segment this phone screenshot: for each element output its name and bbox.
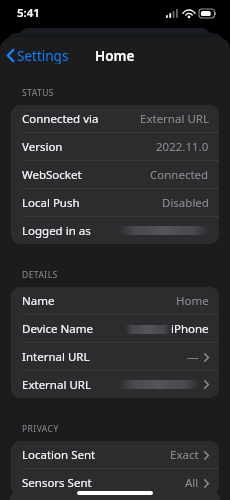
staticText: Location Sent xyxy=(22,447,96,463)
button[interactable]: Internal URL xyxy=(11,343,219,370)
staticText: External URL xyxy=(22,377,91,393)
staticText: 5:41 xyxy=(17,5,40,21)
staticText: Version xyxy=(22,139,63,155)
staticText: STATUS xyxy=(22,87,54,99)
staticText: Exact xyxy=(170,447,199,463)
staticText: PRIVACY xyxy=(22,423,59,435)
button[interactable]: Sensors Sent xyxy=(11,469,219,496)
other: Open xyxy=(204,353,209,362)
staticText: Device Name xyxy=(22,321,93,337)
staticText: External URL xyxy=(140,111,209,127)
staticText: Name xyxy=(22,293,55,309)
other: Open xyxy=(204,380,209,389)
button[interactable]: Location Sent xyxy=(11,441,219,468)
staticText: Logged in as xyxy=(22,223,91,239)
staticText: Disabled xyxy=(162,195,209,211)
staticText: Sensors Sent xyxy=(22,475,92,491)
staticText: Home xyxy=(176,293,209,309)
button[interactable]: External URL xyxy=(11,371,219,398)
staticText: Local Push xyxy=(22,195,80,211)
other: Open xyxy=(204,479,209,488)
staticText: Internal URL xyxy=(22,349,90,365)
staticText: DETAILS xyxy=(22,269,58,281)
staticText: 2022.11.0 xyxy=(156,139,209,155)
staticText: iPhone xyxy=(171,321,209,337)
staticText: Connected xyxy=(150,167,209,183)
other: Open xyxy=(204,451,209,460)
staticText: Home xyxy=(95,47,135,65)
staticText: Connected via xyxy=(22,111,99,127)
staticText: — xyxy=(187,349,199,365)
staticText: Settings xyxy=(17,47,69,64)
staticText: WebSocket xyxy=(22,167,82,183)
button[interactable]: Settings xyxy=(0,43,77,68)
staticText: All xyxy=(185,475,199,491)
